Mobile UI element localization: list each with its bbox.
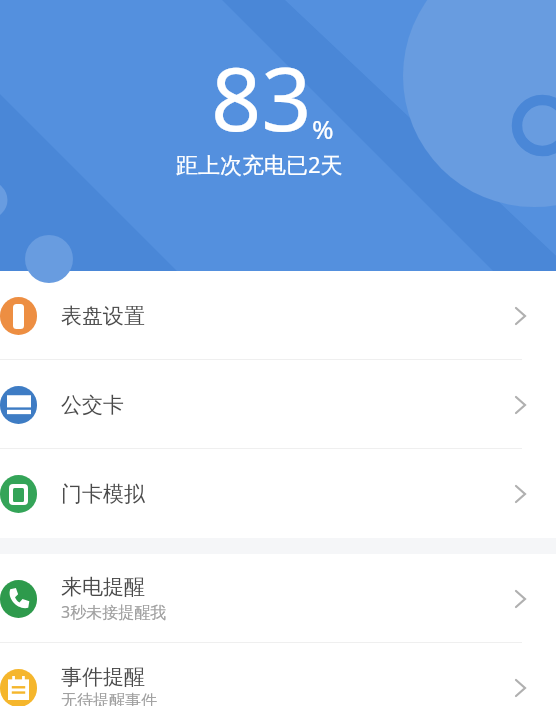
staticText: 83 — [211, 37, 312, 157]
staticText: 来电提醒 — [61, 574, 145, 600]
button[interactable]: 公交卡 — [0, 360, 556, 449]
button[interactable]: 来电提醒 — [0, 554, 556, 643]
staticText: 门卡模拟 — [61, 481, 145, 507]
staticText: % — [312, 111, 334, 146]
button[interactable]: 门卡模拟 — [0, 449, 556, 538]
staticText: 事件提醒 — [61, 664, 145, 690]
button[interactable]: 事件提醒 — [0, 643, 556, 706]
staticText: 3秒未接提醒我 — [61, 601, 167, 623]
staticText: 距上次充电已2天 — [176, 149, 343, 179]
staticText: 无待提醒事件 — [61, 691, 157, 706]
staticText: 表盘设置 — [61, 303, 145, 329]
staticText: 公交卡 — [61, 392, 124, 418]
button[interactable]: 表盘设置 — [0, 271, 556, 360]
